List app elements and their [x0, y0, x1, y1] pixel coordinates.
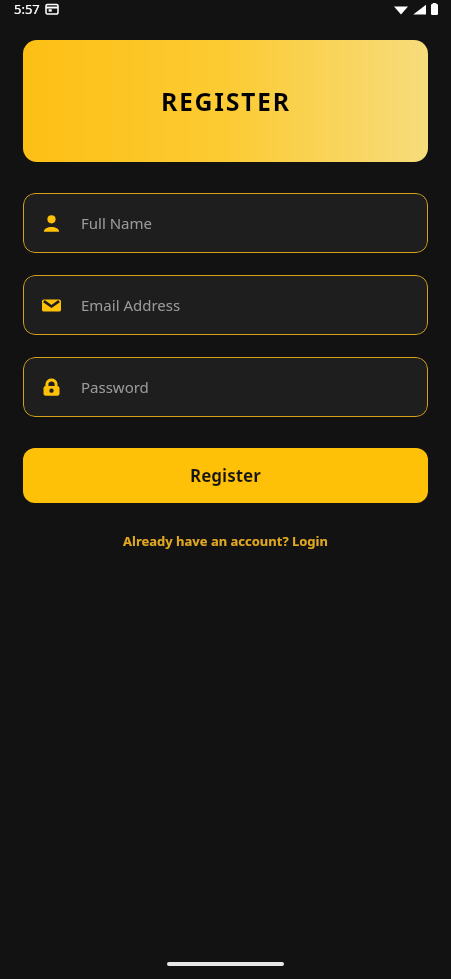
staticText: Already have an account? Login — [123, 532, 328, 550]
staticText: Password — [81, 377, 149, 397]
staticText: 5:57 — [14, 0, 40, 18]
staticText: Email Address — [81, 295, 181, 315]
staticText: Register — [190, 464, 261, 487]
staticText: Full Name — [81, 213, 152, 233]
staticText: REGISTER — [161, 84, 291, 118]
button[interactable]: Register — [23, 448, 428, 503]
button[interactable]: REGISTER — [23, 40, 428, 162]
button[interactable]: Password — [23, 357, 428, 417]
button[interactable]: Full Name — [23, 193, 428, 253]
button[interactable]: Already have an account? Login — [0, 528, 451, 554]
button[interactable]: Email Address — [23, 275, 428, 335]
